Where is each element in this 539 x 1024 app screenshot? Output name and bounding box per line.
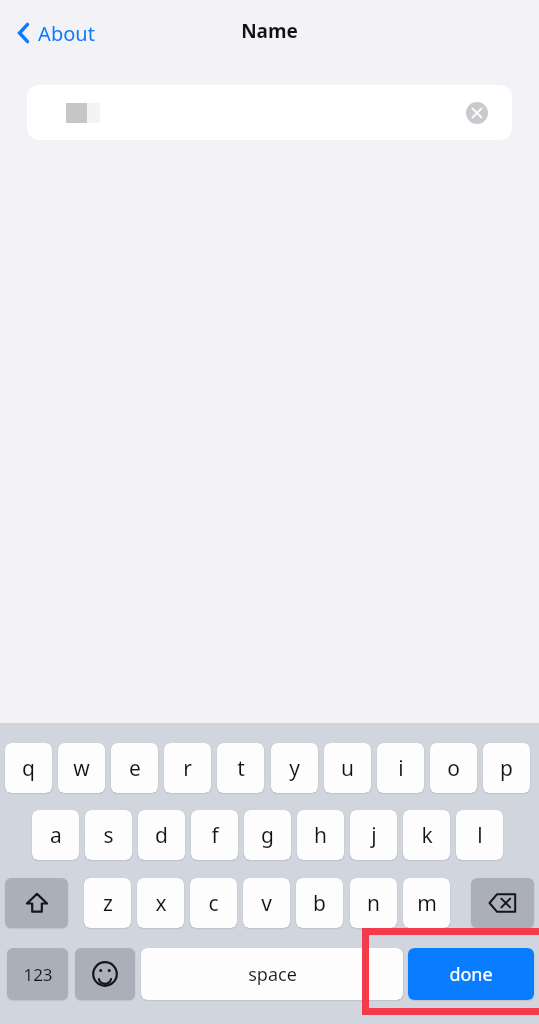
button[interactable]: i	[377, 743, 424, 793]
staticText: z	[103, 889, 113, 918]
staticText: b	[313, 889, 326, 918]
button[interactable]: Clear text	[27, 85, 512, 140]
staticText: f	[211, 821, 219, 850]
button[interactable]: 123	[7, 948, 68, 1000]
button[interactable]: n	[350, 878, 397, 928]
button[interactable]: r	[164, 743, 211, 793]
button[interactable]: Shift	[5, 878, 68, 928]
button[interactable]: g	[244, 810, 291, 860]
staticText: c	[208, 889, 219, 918]
staticText: t	[237, 754, 245, 783]
button[interactable]: m	[403, 878, 450, 928]
button[interactable]: done	[408, 948, 534, 1000]
staticText: a	[50, 821, 62, 850]
staticText: g	[261, 821, 274, 850]
staticText: e	[129, 754, 141, 783]
button[interactable]: x	[137, 878, 184, 928]
button[interactable]: Delete	[471, 878, 534, 928]
staticText: space	[248, 962, 297, 987]
staticText: d	[155, 821, 168, 850]
button[interactable]: a	[32, 810, 79, 860]
button[interactable]: z	[84, 878, 131, 928]
staticText: q	[22, 754, 35, 783]
staticText: p	[500, 754, 513, 783]
staticText: w	[73, 754, 90, 783]
staticText: y	[289, 754, 300, 783]
staticText: r	[183, 754, 192, 783]
button[interactable]: p	[483, 743, 530, 793]
button[interactable]: c	[190, 878, 237, 928]
staticText: i	[398, 754, 404, 783]
button[interactable]: w	[58, 743, 105, 793]
button[interactable]: b	[296, 878, 343, 928]
staticText: k	[421, 821, 433, 850]
button[interactable]: q	[5, 743, 52, 793]
staticText: done	[449, 962, 493, 987]
button[interactable]: e	[111, 743, 158, 793]
staticText: About	[38, 20, 95, 47]
button[interactable]: h	[297, 810, 344, 860]
button[interactable]: f	[191, 810, 238, 860]
button[interactable]: Clear text	[462, 98, 492, 128]
button[interactable]: space	[141, 948, 403, 1000]
staticText: j	[371, 821, 377, 850]
button[interactable]: y	[271, 743, 318, 793]
button[interactable]: Emoji	[75, 948, 135, 1000]
staticText: n	[367, 889, 380, 918]
button[interactable]: About	[12, 16, 99, 50]
staticText: v	[261, 889, 272, 918]
button[interactable]: u	[324, 743, 371, 793]
staticText: o	[447, 754, 460, 783]
staticText: u	[341, 754, 354, 783]
button[interactable]: k	[403, 810, 450, 860]
button[interactable]: l	[456, 810, 503, 860]
staticText: Name	[241, 18, 298, 44]
staticText: 123	[23, 963, 53, 986]
button[interactable]: d	[138, 810, 185, 860]
button[interactable]: t	[217, 743, 264, 793]
staticText: l	[477, 821, 483, 850]
button[interactable]: o	[430, 743, 477, 793]
button[interactable]: v	[243, 878, 290, 928]
button[interactable]: j	[350, 810, 397, 860]
staticText: h	[314, 821, 327, 850]
staticText: s	[103, 821, 114, 850]
button[interactable]: s	[85, 810, 132, 860]
staticText: x	[155, 889, 167, 918]
staticText: m	[417, 889, 437, 918]
